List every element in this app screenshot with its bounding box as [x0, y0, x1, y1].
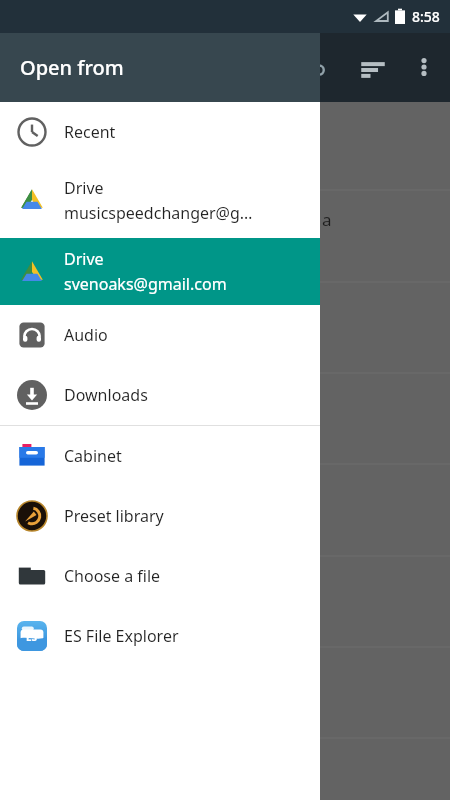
- button[interactable]: Cabinet: [0, 426, 320, 486]
- staticText: ES File Explorer: [64, 625, 179, 647]
- staticText: Choose a file: [64, 565, 161, 587]
- button[interactable]: Audio: [0, 305, 320, 365]
- staticText: musicspeedchanger@g…: [64, 202, 253, 224]
- staticText: svenoaks@gmail.com: [64, 273, 227, 295]
- button[interactable]: Drive: [0, 162, 320, 238]
- staticText: Cabinet: [64, 445, 122, 467]
- button[interactable]: Sort: [352, 47, 394, 89]
- button[interactable]: Recent: [0, 102, 320, 162]
- button[interactable]: Open from: [0, 33, 320, 102]
- button[interactable]: Drive: [0, 238, 320, 305]
- staticText: a: [322, 208, 332, 231]
- staticText: Drive: [64, 177, 104, 199]
- staticText: 8:58: [412, 7, 440, 26]
- button[interactable]: Choose a file: [0, 546, 320, 606]
- staticText: Open from: [20, 54, 124, 81]
- staticText: Audio: [64, 324, 108, 346]
- staticText: Preset library: [64, 505, 164, 527]
- staticText: ES: [26, 630, 38, 644]
- staticText: Drive: [64, 248, 104, 270]
- staticText: Recent: [64, 121, 116, 143]
- button[interactable]: Downloads: [0, 365, 320, 425]
- button[interactable]: Preset library: [0, 486, 320, 546]
- button[interactable]: More options: [404, 47, 444, 87]
- staticText: Downloads: [64, 384, 148, 406]
- button[interactable]: ES: [0, 606, 320, 666]
